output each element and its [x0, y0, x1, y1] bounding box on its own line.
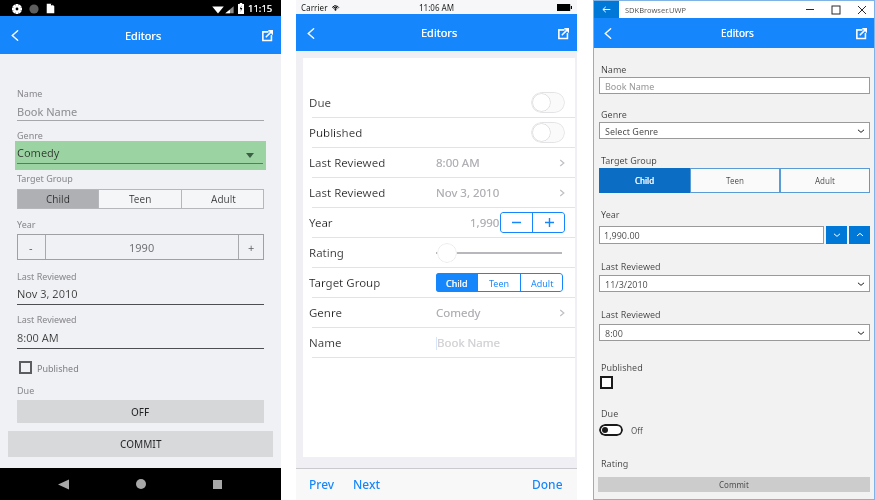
- staticText: Commit: [719, 479, 749, 490]
- button[interactable]: 8:00: [599, 324, 870, 341]
- button[interactable]: Child: [17, 189, 98, 209]
- staticText: Due: [601, 407, 619, 419]
- button[interactable]: Teen: [478, 273, 520, 292]
- staticText: Book Name: [17, 104, 78, 119]
- button[interactable]: 11/3/2010: [599, 275, 870, 292]
- staticText: Nov 3, 2010: [17, 286, 78, 301]
- staticText: Editors: [421, 25, 458, 40]
- button[interactable]: Maximize: [823, 1, 849, 18]
- staticText: Last Reviewed: [309, 185, 386, 201]
- button[interactable]: Last Reviewed: [303, 178, 575, 207]
- button[interactable]: Child: [599, 168, 690, 193]
- staticText: Adult: [531, 277, 554, 289]
- staticText: COMMIT: [120, 437, 162, 451]
- staticText: 8:00 AM: [17, 330, 59, 345]
- button[interactable]: Teen: [690, 168, 780, 193]
- button[interactable]: Home: [130, 473, 152, 495]
- button[interactable]: OFF: [17, 400, 264, 423]
- button[interactable]: Published checkbox: [600, 376, 613, 389]
- button[interactable]: Back: [593, 1, 619, 18]
- button[interactable]: Adult: [780, 168, 870, 193]
- staticText: Carrier: [301, 2, 328, 13]
- button[interactable]: Year: [303, 208, 575, 237]
- button[interactable]: Back: [595, 21, 619, 45]
- button[interactable]: Decrement: [826, 226, 847, 244]
- button[interactable]: Off: [599, 424, 643, 436]
- staticText: Last Reviewed: [17, 270, 77, 282]
- button[interactable]: Adult: [521, 273, 563, 292]
- staticText: Published: [309, 125, 363, 141]
- staticText: Editors: [721, 26, 754, 40]
- button[interactable]: Increment: [533, 212, 565, 233]
- staticText: 1,990.00: [604, 229, 640, 241]
- button[interactable]: Close: [849, 1, 875, 18]
- button[interactable]: 8:00 AM: [17, 330, 264, 345]
- button[interactable]: Open external: [550, 21, 574, 45]
- button[interactable]: Done: [528, 472, 567, 496]
- button[interactable]: Comedy: [15, 141, 266, 170]
- staticText: 1,990: [470, 215, 500, 231]
- button[interactable]: Recents: [206, 473, 228, 495]
- staticText: Year: [601, 208, 620, 220]
- button[interactable]: Rating: [303, 238, 575, 267]
- staticText: 11:15: [248, 2, 273, 15]
- staticText: Child: [46, 192, 70, 206]
- button[interactable]: Book Name: [599, 77, 870, 94]
- staticText: Teen: [129, 192, 152, 206]
- button[interactable]: Adult: [182, 189, 264, 209]
- staticText: Year: [17, 218, 36, 230]
- button[interactable]: Target Group: [303, 268, 575, 297]
- staticText: Child: [635, 175, 655, 186]
- button[interactable]: Due toggle: [531, 92, 565, 113]
- button[interactable]: Next: [349, 472, 385, 496]
- staticText: Select Genre: [605, 125, 659, 137]
- staticText: Book Name: [605, 80, 655, 92]
- button[interactable]: Select Genre: [599, 122, 870, 139]
- button[interactable]: Due: [303, 88, 575, 117]
- button[interactable]: Published: [303, 118, 575, 147]
- staticText: Adult: [211, 192, 236, 206]
- staticText: Rating: [309, 245, 344, 261]
- button[interactable]: Name: [303, 328, 575, 357]
- button[interactable]: Teen: [99, 189, 181, 209]
- button[interactable]: COMMIT: [8, 431, 273, 457]
- button[interactable]: Back: [52, 473, 74, 495]
- button[interactable]: Decrement: [500, 212, 532, 233]
- staticText: Year: [309, 215, 333, 231]
- staticText: Last Reviewed: [309, 155, 386, 171]
- button[interactable]: Nov 3, 2010: [17, 286, 264, 301]
- button[interactable]: Open external: [254, 23, 278, 47]
- button[interactable]: Back: [2, 23, 26, 47]
- button[interactable]: Increment year: [239, 234, 264, 260]
- button[interactable]: Decrement year: [17, 234, 45, 260]
- button[interactable]: Minimize: [797, 1, 823, 18]
- button[interactable]: Increment: [849, 226, 870, 244]
- button[interactable]: Commit: [598, 477, 870, 492]
- staticText: Next: [353, 476, 381, 492]
- button[interactable]: Genre: [303, 298, 575, 327]
- button[interactable]: Rating slider: [437, 243, 457, 263]
- staticText: Off: [631, 425, 643, 436]
- staticText: Teen: [726, 175, 744, 186]
- button[interactable]: Prev: [305, 472, 339, 496]
- staticText: Last Reviewed: [601, 260, 661, 272]
- staticText: Nov 3, 2010: [436, 185, 500, 201]
- staticText: Due: [309, 95, 331, 111]
- staticText: Book Name: [437, 335, 500, 351]
- staticText: Target Group: [309, 275, 381, 291]
- staticText: Genre: [601, 108, 627, 120]
- staticText: Name: [17, 87, 43, 99]
- staticText: 11:06 AM: [419, 2, 455, 13]
- button[interactable]: Published toggle: [531, 122, 565, 143]
- staticText: Name: [601, 63, 627, 75]
- staticText: Rating: [601, 457, 629, 469]
- button[interactable]: Open external: [848, 21, 872, 45]
- button[interactable]: Published: [19, 361, 79, 374]
- staticText: Editors: [125, 28, 162, 43]
- staticText: +: [248, 240, 255, 255]
- button[interactable]: Last Reviewed: [303, 148, 575, 177]
- staticText: 11/3/2010: [605, 278, 648, 290]
- staticText: Comedy: [436, 305, 481, 321]
- button[interactable]: Child: [436, 273, 477, 292]
- button[interactable]: Back: [298, 21, 322, 45]
